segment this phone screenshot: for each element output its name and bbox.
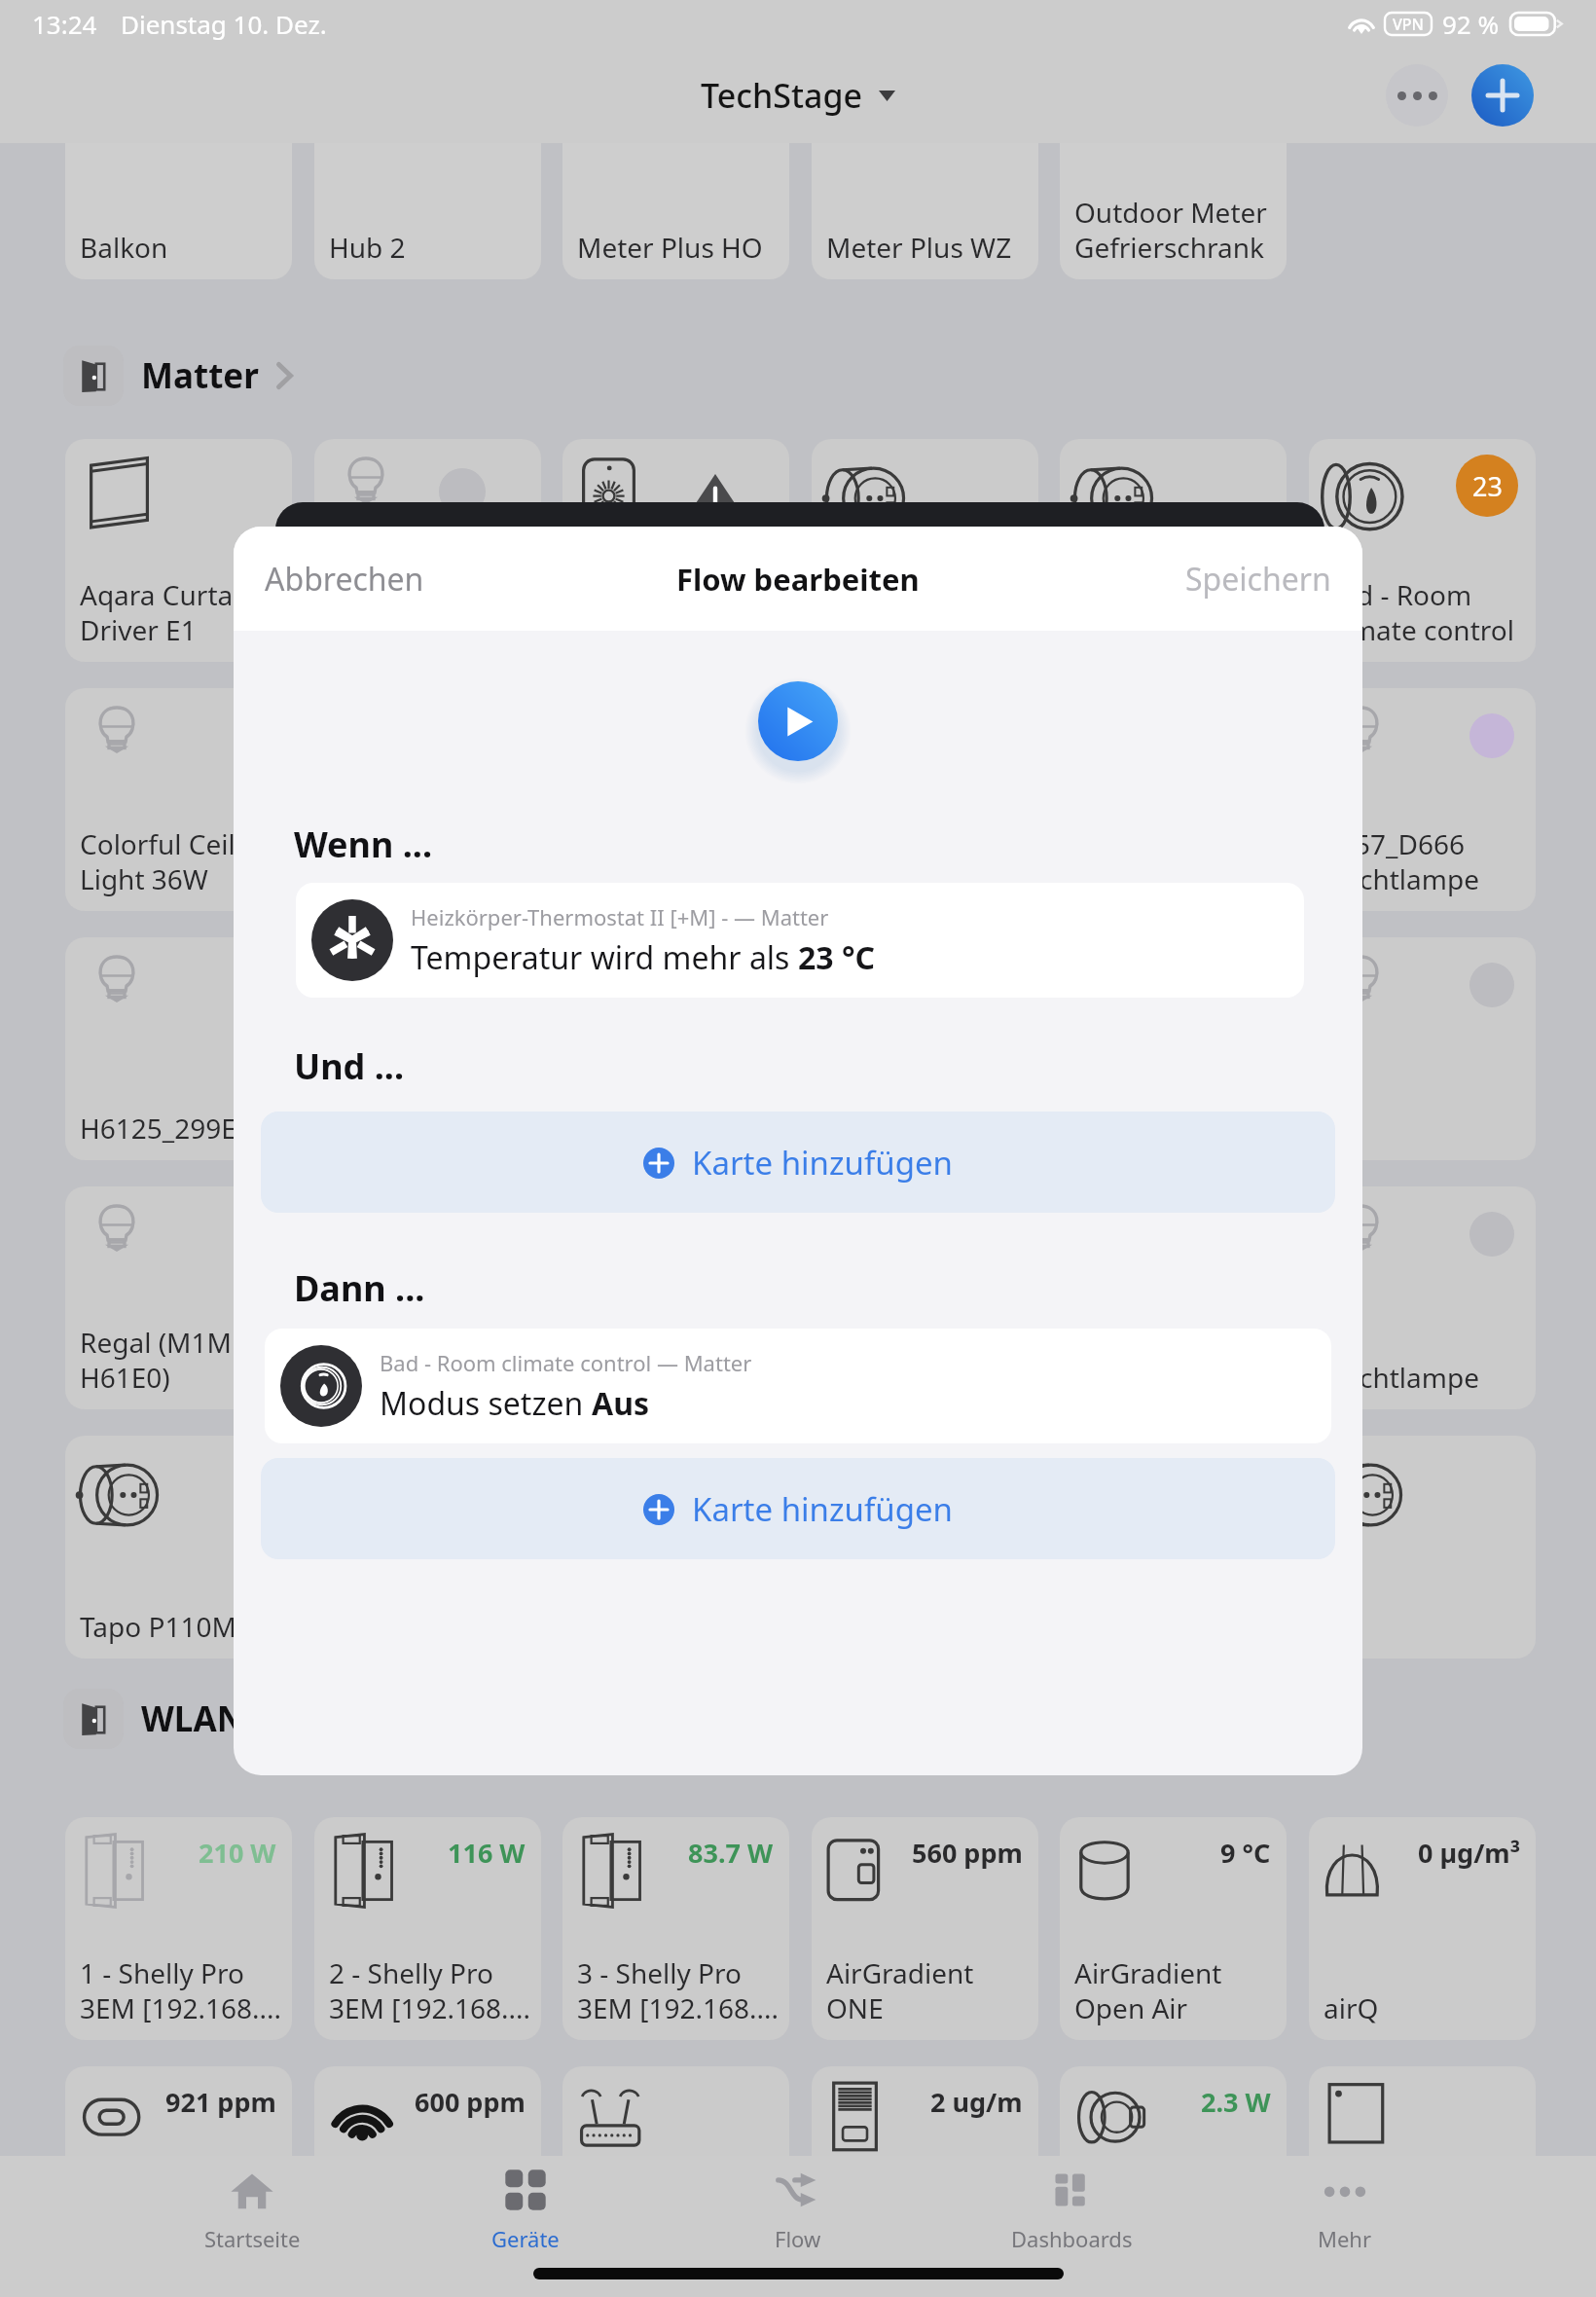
button[interactable]: Abbrechen xyxy=(255,548,434,610)
button[interactable]: H6125_299E xyxy=(65,937,292,1160)
staticText: Bad - Room climate control — Matter xyxy=(380,1348,752,1377)
button[interactable]: Meter Plus WZ xyxy=(812,58,1038,279)
staticText: Heizkörper-Thermostat II [+M] - — Matter xyxy=(411,902,829,931)
button[interactable]: Karte hinzufügen xyxy=(261,1112,1335,1213)
staticText: Outdoor Meter Gefrierschrank xyxy=(1074,194,1267,266)
button[interactable]: Geräte xyxy=(389,2168,662,2253)
button[interactable]: Regal (M1M H61E0) xyxy=(65,1186,292,1409)
button[interactable] xyxy=(314,937,541,1160)
button[interactable]: Nachtlampe xyxy=(1309,1186,1536,1409)
button[interactable]: Balkon xyxy=(65,58,292,279)
button[interactable]: 68 xyxy=(1309,937,1536,1160)
button[interactable]: 0 µg/m³ xyxy=(1309,1817,1536,2040)
button[interactable]: Karte hinzufügen xyxy=(261,1458,1335,1559)
staticText: AirGradient Open Air xyxy=(1074,1954,1222,2026)
button[interactable]: 2 ug/m xyxy=(812,2066,1038,2289)
staticText: TechStage xyxy=(701,73,863,118)
button[interactable]: Outdoor Meter Gefrierschrank xyxy=(1060,58,1287,279)
button[interactable]: 921 ppm xyxy=(65,2066,292,2289)
button[interactable]: 600 ppm xyxy=(314,2066,541,2289)
staticText: Regal (M1M H61E0) xyxy=(80,1324,232,1396)
button[interactable]: WLAN xyxy=(63,1689,279,1749)
staticText: AirGradient ONE xyxy=(826,1954,974,2026)
button[interactable]: Colorful Ceiling Light 36W xyxy=(65,688,292,911)
button[interactable] xyxy=(1309,2066,1536,2289)
button[interactable]: 0057_D666 Nachtlampe xyxy=(1309,688,1536,911)
staticText: Und ... xyxy=(294,1042,405,1090)
staticText: Karte hinzufügen xyxy=(692,1487,953,1531)
staticText: 2.3 W xyxy=(1201,2084,1271,2120)
button[interactable] xyxy=(812,1186,1038,1409)
staticText: 92 % xyxy=(1442,7,1500,41)
button[interactable] xyxy=(562,937,789,1160)
button[interactable]: Test flow xyxy=(758,681,838,761)
button[interactable] xyxy=(812,1436,1038,1659)
staticText: WLAN xyxy=(141,1695,245,1742)
button[interactable]: Tapo P110M xyxy=(65,1436,292,1659)
staticText: Tapo P110M xyxy=(80,1608,236,1645)
button[interactable]: Aqara Curtain Driver E1 xyxy=(65,439,292,662)
staticText: 68 xyxy=(1324,1110,1356,1147)
button[interactable] xyxy=(812,937,1038,1160)
button[interactable]: 116 W xyxy=(314,1817,541,2040)
button[interactable]: Heizkörper-Thermostat II [+M] - — Matter xyxy=(296,883,1304,998)
button[interactable]: Mehr xyxy=(1209,2168,1481,2253)
staticText: Meter Plus HO xyxy=(577,229,763,266)
button[interactable]: Dashboards xyxy=(935,2168,1208,2253)
button[interactable]: 210 W xyxy=(65,1817,292,2040)
button[interactable] xyxy=(562,1436,789,1659)
staticText: 2 ug/m xyxy=(930,2084,1023,2120)
staticText: 1 - Shelly Pro 3EM [192.168.... xyxy=(80,1954,282,2026)
button[interactable] xyxy=(812,439,1038,662)
button[interactable]: Add device xyxy=(1471,64,1534,127)
staticText: 3 - Shelly Pro 3EM [192.168.... xyxy=(577,1954,780,2026)
staticText: Startseite xyxy=(204,2224,301,2253)
staticText: Dashboards xyxy=(1011,2224,1133,2253)
button[interactable] xyxy=(812,688,1038,911)
staticText: VPN xyxy=(1393,14,1425,35)
button[interactable]: Hub 2 xyxy=(314,58,541,279)
staticText: Hub 2 xyxy=(329,229,406,266)
button[interactable]: 2.3 W xyxy=(1060,2066,1287,2289)
button[interactable] xyxy=(1060,1436,1287,1659)
button[interactable] xyxy=(1060,937,1287,1160)
staticText: 0 µg/m³ xyxy=(1418,1835,1520,1871)
staticText: 23 °C xyxy=(798,936,876,979)
staticText: Modus setzen xyxy=(380,1382,592,1425)
button[interactable] xyxy=(314,1436,541,1659)
staticText: Aus xyxy=(592,1382,650,1425)
staticText: 2 - Shelly Pro 3EM [192.168.... xyxy=(329,1954,531,2026)
button[interactable]: More options xyxy=(1386,64,1448,127)
staticText: 13:24 xyxy=(32,7,97,41)
button[interactable] xyxy=(562,2066,789,2289)
button[interactable] xyxy=(314,439,541,662)
button[interactable] xyxy=(562,439,789,662)
staticText: 83.7 W xyxy=(688,1835,774,1871)
button[interactable]: 9 °C xyxy=(1060,1817,1287,2040)
staticText: 0057_D666 Nachtlampe xyxy=(1324,825,1479,897)
button[interactable] xyxy=(562,688,789,911)
button[interactable]: Bad - Room climate control — Matter xyxy=(265,1329,1331,1443)
button[interactable]: Matter xyxy=(63,346,293,406)
button[interactable]: TechStage xyxy=(691,63,905,128)
button[interactable] xyxy=(1309,1436,1536,1659)
button[interactable] xyxy=(314,1186,541,1409)
button[interactable] xyxy=(1060,688,1287,911)
button[interactable] xyxy=(1060,1186,1287,1409)
button[interactable]: Startseite xyxy=(116,2168,388,2253)
button[interactable] xyxy=(562,1186,789,1409)
staticText: Aqara Curtain Driver E1 xyxy=(80,576,257,648)
staticText: Temperatur wird mehr als xyxy=(411,936,798,979)
button[interactable]: 560 ppm xyxy=(812,1817,1038,2040)
staticText: 600 ppm xyxy=(415,2084,526,2120)
button[interactable]: Meter Plus HO xyxy=(562,58,789,279)
button[interactable]: Speichern xyxy=(1176,548,1341,610)
button[interactable] xyxy=(1060,439,1287,662)
staticText: Karte hinzufügen xyxy=(692,1141,953,1185)
button[interactable]: 83.7 W xyxy=(562,1817,789,2040)
button[interactable]: 23 xyxy=(1309,439,1536,662)
button[interactable] xyxy=(314,688,541,911)
button[interactable]: Flow xyxy=(662,2168,934,2253)
staticText: Matter xyxy=(141,352,259,399)
staticText: 560 ppm xyxy=(912,1835,1023,1871)
